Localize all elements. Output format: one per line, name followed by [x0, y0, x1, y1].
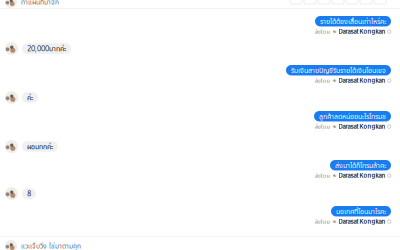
button[interactable]: Quick reply	[346, 0, 358, 4]
staticText: แวะเจ็บวิ่ง ใช่มาตามคุก	[21, 241, 81, 250]
button[interactable]: มอเทศที่โอนมาไรคะ	[0, 206, 391, 226]
staticText: ส่งมาได้ก็โทรมล้าคะ	[335, 160, 386, 170]
staticText: 20,000บาทค่ะ	[27, 44, 66, 53]
staticText: ค่ะ	[27, 93, 33, 102]
button[interactable]: Quick reply	[318, 0, 330, 4]
button[interactable]: ค่ะ	[5, 91, 400, 104]
staticText: ส่งโดย	[315, 76, 331, 85]
staticText: Darasat Kongkan	[339, 28, 386, 35]
button[interactable]: ส่งมาได้ก็โทรมล้าคะ	[0, 160, 391, 180]
staticText: Darasat Kongkan	[339, 123, 386, 130]
button[interactable]: 20,000บาทค่ะ	[5, 42, 400, 55]
staticText: ทำแผนที่มาจัก	[21, 0, 59, 7]
staticText: มอเทศที่โอนมาไรคะ	[336, 206, 386, 216]
button[interactable]: Quick reply	[360, 0, 372, 4]
staticText: ลูกค้าลดหน่อยนะไรโทรมซ	[319, 111, 386, 121]
staticText: ส่งโดย	[315, 171, 331, 180]
staticText: ส่งโดย	[315, 217, 331, 226]
staticText: ผอมทกค่ะ	[27, 142, 53, 151]
staticText: รับเงินสายปัญชีรับรายได้เงินโอนเขจ	[291, 65, 386, 75]
button[interactable]: 8	[5, 187, 400, 200]
staticText: ส่งโดย	[315, 27, 331, 36]
button[interactable]: ลูกค้าลดหน่อยนะไรโทรมซ	[0, 111, 391, 131]
button[interactable]: Quick reply	[290, 0, 302, 4]
button[interactable]: Quick reply	[304, 0, 316, 4]
staticText: Darasat Kongkan	[339, 218, 386, 225]
button[interactable]: Quick reply	[332, 0, 344, 4]
button[interactable]: รับเงินสายปัญชีรับรายได้เงินโอนเขจ	[0, 65, 391, 85]
staticText: 8	[27, 189, 31, 198]
staticText: Darasat Kongkan	[339, 172, 386, 179]
button[interactable]: ผอมทกค่ะ	[5, 140, 400, 153]
staticText: ส่งโดย	[315, 122, 331, 131]
button[interactable]: รายได้ต้องเสื้อนเท่าไหร่คะ	[0, 16, 391, 36]
staticText: Darasat Kongkan	[339, 77, 386, 84]
staticText: รายได้ต้องเสื้อนเท่าไหร่คะ	[320, 16, 386, 26]
button[interactable]: Quick reply	[374, 0, 386, 4]
